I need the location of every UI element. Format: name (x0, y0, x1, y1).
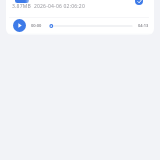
button[interactable]: Play (13, 19, 26, 32)
staticText: 00:00 (31, 23, 42, 28)
staticText: 3.87MB 2026-04-06 02:06:20 (12, 3, 85, 10)
staticText: 04:13 (138, 23, 149, 28)
button[interactable]: 3.87MB 2026-04-06 02:06:20 (6, 0, 154, 35)
button[interactable]: Selected (135, 0, 143, 5)
